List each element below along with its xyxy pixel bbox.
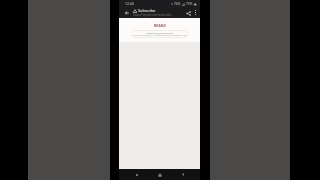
staticText: https://mysite.com/subscribe bbox=[133, 13, 172, 17]
staticText: Subscribe bbox=[138, 8, 156, 13]
button[interactable]: Home bbox=[154, 169, 165, 180]
staticText: 12:44 bbox=[125, 1, 134, 6]
button[interactable]: Back bbox=[177, 169, 188, 180]
staticText: Lorem ipsum dolor sit amet consectetur a… bbox=[133, 34, 187, 37]
button[interactable]: Back bbox=[123, 9, 130, 16]
staticText: 73% bbox=[186, 2, 193, 6]
staticText: something@gmail.com bbox=[146, 31, 174, 34]
button[interactable]: Recent apps bbox=[131, 169, 142, 180]
staticText: 76% bbox=[174, 2, 181, 6]
staticText: BRAND bbox=[154, 23, 166, 27]
button[interactable]: Share bbox=[184, 9, 192, 17]
button[interactable]: More options bbox=[192, 9, 199, 16]
